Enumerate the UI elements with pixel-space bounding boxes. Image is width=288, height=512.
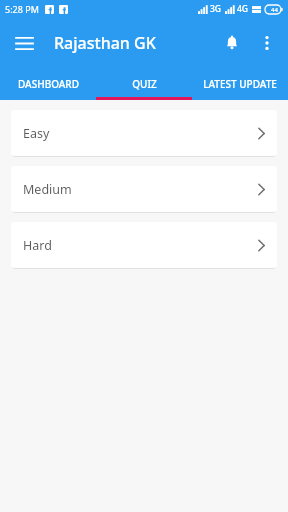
staticText: 5:28 PM (5, 3, 39, 15)
staticText: DASHBOARD (18, 77, 79, 91)
staticText: LATEST UPDATE (203, 77, 277, 91)
button[interactable]: Hard (11, 222, 277, 268)
button[interactable]: Easy (11, 110, 277, 156)
staticText: Hard (23, 237, 52, 254)
staticText: 4G (237, 3, 249, 15)
staticText: Easy (23, 125, 50, 142)
staticText: Medium (23, 181, 72, 198)
button[interactable]: Notifications (214, 25, 250, 61)
staticText: Rajasthan GK (54, 32, 156, 54)
button[interactable]: Open navigation drawer (6, 25, 42, 61)
button[interactable]: QUIZ (96, 68, 192, 100)
staticText: 44 (271, 6, 278, 14)
button[interactable]: Medium (11, 166, 277, 212)
button[interactable]: More options (250, 26, 284, 60)
button[interactable]: LATEST UPDATE (192, 68, 288, 100)
button[interactable]: DASHBOARD (0, 68, 96, 100)
staticText: 3G (210, 3, 222, 15)
staticText: QUIZ (132, 77, 157, 91)
